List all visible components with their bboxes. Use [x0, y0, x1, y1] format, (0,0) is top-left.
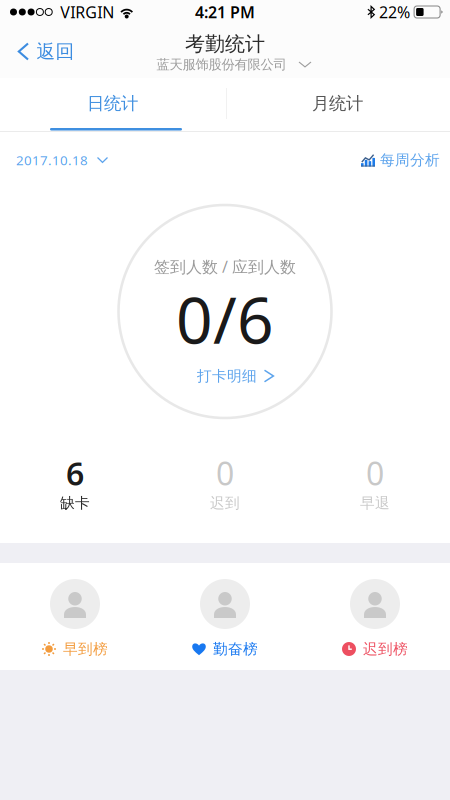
staticText: 勤奋榜	[213, 640, 258, 658]
button[interactable]: 返回	[0, 30, 86, 72]
button[interactable]: 日统计	[0, 78, 225, 129]
staticText: 早到榜	[63, 640, 108, 658]
staticText: 6	[66, 452, 84, 494]
button[interactable]: 迟到榜	[300, 563, 450, 670]
staticText: 蓝天服饰股份有限公司	[156, 56, 286, 73]
button[interactable]: 打卡明细	[187, 363, 284, 389]
button[interactable]: 0	[300, 459, 450, 512]
staticText: 打卡明细	[197, 367, 257, 385]
staticText: 签到人数 / 应到人数	[154, 256, 296, 277]
staticText: 日统计	[87, 93, 138, 114]
button[interactable]: 6	[0, 459, 150, 512]
staticText: 早退	[360, 494, 390, 512]
staticText: 2017.10.18	[16, 151, 88, 169]
button[interactable]: 早到榜	[0, 563, 150, 670]
button[interactable]: 蓝天服饰股份有限公司	[148, 54, 319, 74]
staticText: 0	[366, 452, 384, 494]
staticText: 考勤统计	[185, 32, 265, 56]
staticText: 迟到榜	[363, 640, 408, 658]
staticText: 22%	[375, 1, 414, 23]
staticText: 0	[216, 452, 234, 494]
staticText: 缺卡	[60, 494, 90, 512]
staticText: VIRGIN	[52, 1, 118, 23]
button[interactable]: 每周分析	[349, 132, 450, 188]
staticText: 月统计	[312, 93, 363, 114]
button[interactable]: 2017.10.18	[0, 132, 120, 188]
button[interactable]: 0	[150, 459, 300, 512]
staticText: 4:21 PM	[195, 1, 255, 23]
button[interactable]: 月统计	[225, 78, 450, 129]
staticText: 迟到	[210, 494, 240, 512]
staticText: 每周分析	[380, 151, 440, 169]
button[interactable]: 勤奋榜	[150, 563, 300, 670]
staticText: 返回	[36, 40, 74, 63]
staticText: 0/6	[176, 276, 274, 361]
